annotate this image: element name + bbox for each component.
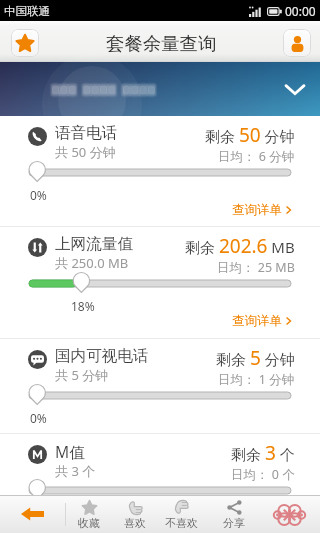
button[interactable]: 国内可视电话 [0,339,320,433]
staticText: 日均： 1 分钟 [218,371,295,388]
button[interactable]: 喜欢 [112,496,158,533]
staticText: 日均： 0 个 [231,466,295,483]
button[interactable]: Expand [0,62,320,116]
button[interactable]: 上网流量值 [0,227,320,338]
button[interactable]: 不喜欢 [155,496,207,533]
staticText: 国内可视电话 [55,346,149,366]
staticText: 不喜欢 [165,516,198,530]
staticText: 剩余 3 个 [231,440,295,466]
staticText: 共 50 分钟 [55,143,116,161]
staticText: 上网流量值 [55,234,133,254]
staticText: 剩余 50 分钟 [205,122,295,148]
staticText: 0% [30,187,47,203]
button[interactable]: China Unicom [258,496,320,533]
staticText: 共 3 个 [55,462,96,480]
staticText: 日均： 25 MB [217,259,295,276]
staticText: 语音电话 [55,123,118,143]
staticText: M值 [55,441,85,462]
staticText: 共 250.0 MB [55,254,129,272]
button[interactable]: Favorite [11,29,39,57]
staticText: 查询详单 [232,313,282,329]
staticText: 喜欢 [124,516,146,530]
staticText: 套餐余量查询 [106,32,217,55]
button[interactable]: 语音电话 [0,116,320,226]
button[interactable]: Account [283,29,311,57]
staticText: 收藏 [78,516,100,530]
other: Expand [286,84,304,95]
staticText: 剩余 202.6 MB [185,233,295,259]
staticText: 查询详单 [232,202,282,218]
button[interactable]: 查询详单 [227,200,296,220]
button[interactable]: 查询详单 [227,311,296,331]
staticText: 18% [71,298,95,314]
staticText: 剩余 5 分钟 [216,345,295,371]
staticText: 日均： 6 分钟 [218,148,295,165]
button[interactable]: M值 [0,434,320,495]
staticText: 0% [30,410,47,426]
button[interactable]: 收藏 [66,496,112,533]
staticText: 共 5 分钟 [55,366,109,384]
button[interactable]: Back [0,496,65,533]
staticText: 中国联通 [4,4,50,18]
button[interactable]: 分享 [210,496,258,533]
staticText: 00:00 [285,3,316,19]
staticText: 分享 [223,516,245,530]
